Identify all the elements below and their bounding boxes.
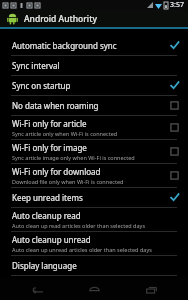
button[interactable]: Sync on startup [0,76,188,96]
staticText: Auto cleanup unread [12,234,91,245]
button[interactable]: Wi-Fi only for article [0,116,188,140]
staticText: Sync article image only when Wi-Fi is co… [12,154,135,161]
staticText: 3:57 [170,0,184,10]
button[interactable]: Sync interval [0,56,188,76]
staticText: Display language [12,260,77,271]
button[interactable]: Auto cleanup read [0,208,188,232]
button[interactable]: Home [74,278,114,300]
button[interactable]: Wi-Fi only for download [0,164,188,188]
staticText: Wi-Fi only for download [12,166,101,177]
staticText: Auto clean up unread articles older than… [12,246,152,253]
staticText: Auto clean up read articles older than s… [12,222,146,229]
button[interactable]: Android Authority [0,10,188,27]
button[interactable]: Automatic background sync [0,36,188,56]
staticText: Sync interval [12,60,60,71]
staticText: Sync article only when Wi-Fi is connecte… [12,130,118,137]
button[interactable]: Recent apps [131,278,171,300]
button[interactable]: Keep unread items [0,188,188,208]
button[interactable]: No data when roaming [0,96,188,116]
button[interactable]: Auto cleanup unread [0,232,188,256]
staticText: Wi-Fi only for article [12,118,87,129]
button[interactable]: Back [17,278,57,300]
button[interactable]: Display language [0,256,188,276]
staticText: Download file only when Wi-Fi is connect… [12,178,124,185]
staticText: Auto cleanup read [12,210,81,221]
button[interactable]: Wi-Fi only for image [0,140,188,164]
staticText: Keep unread items [12,192,83,203]
staticText: Automatic background sync [12,40,117,51]
staticText: Wi-Fi only for image [12,142,87,153]
staticText: No data when roaming [12,100,99,111]
staticText: Sync on startup [12,80,71,91]
staticText: Android Authority [24,13,97,25]
